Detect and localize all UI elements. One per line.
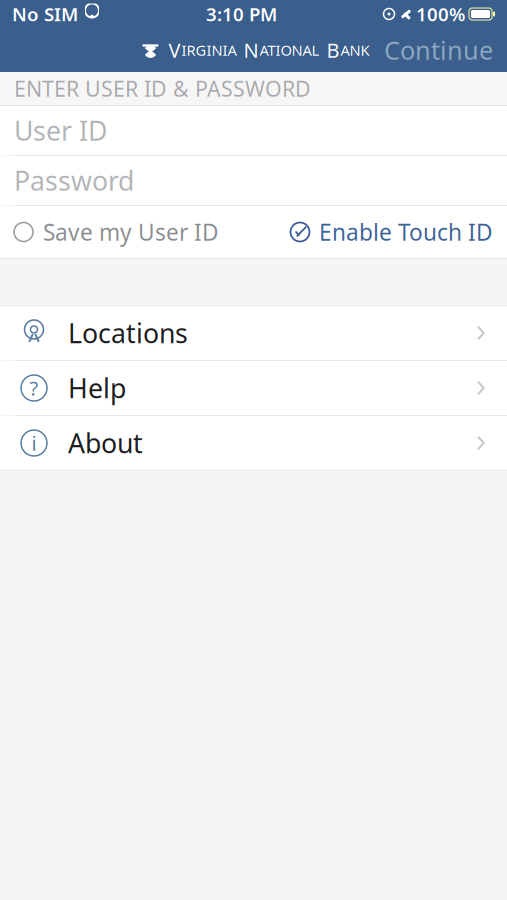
staticText: ATIONAL (259, 40, 319, 60)
staticText: User ID (14, 113, 107, 148)
staticText: i (31, 430, 36, 456)
staticText: Save my User ID (43, 217, 219, 247)
button[interactable]: Save my User ID (0, 206, 229, 258)
staticText: 3:10 PM (206, 2, 277, 26)
staticText: Locations (68, 315, 188, 351)
staticText: Help (68, 370, 126, 406)
staticText: No SIM (12, 2, 78, 26)
button[interactable]: i (0, 416, 507, 471)
staticText: N (243, 37, 258, 63)
button[interactable]: ? (0, 361, 507, 416)
staticText: Enable Touch ID (319, 217, 493, 247)
button[interactable]: Continue (370, 28, 507, 72)
button[interactable]: Enable Touch ID (279, 206, 507, 258)
staticText: ENTER USER ID & PASSWORD (14, 74, 311, 103)
staticText: B (326, 37, 339, 63)
staticText: V (168, 37, 180, 63)
staticText: 100% (416, 2, 465, 26)
staticText: Continue (384, 33, 493, 67)
staticText: ANK (340, 40, 369, 60)
staticText: IRGINIA (181, 40, 236, 60)
button[interactable]: Locations (0, 306, 507, 361)
staticText: ? (29, 375, 38, 401)
staticText: Password (14, 163, 134, 198)
staticText: About (68, 425, 143, 461)
